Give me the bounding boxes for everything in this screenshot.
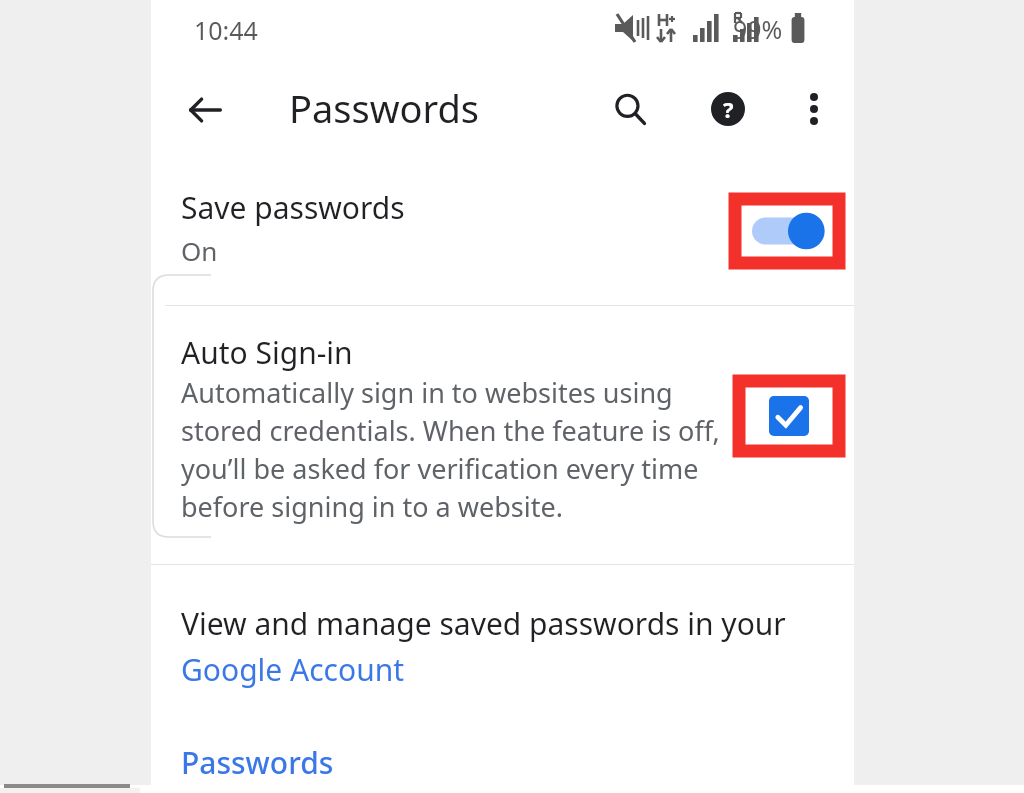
button[interactable]: View and manage saved passwords in your … — [181, 603, 801, 690]
staticText: Passwords — [289, 82, 480, 134]
staticText: 10:44 — [194, 13, 258, 47]
staticText: Auto Sign-in — [181, 332, 353, 373]
staticText: Automatically sign in to websites using … — [181, 374, 721, 525]
staticText: Save passwords — [181, 187, 405, 228]
button[interactable]: Passwords — [181, 742, 334, 783]
button[interactable]: Save passwords — [151, 160, 854, 305]
staticText: 99% — [733, 12, 783, 46]
staticText: ? — [723, 94, 734, 124]
button[interactable]: Auto Sign-in — [151, 306, 854, 564]
button[interactable]: Auto Sign-in checkbox — [739, 381, 839, 451]
button[interactable]: Help — [697, 78, 759, 140]
button[interactable]: Back — [175, 80, 235, 140]
staticText: On — [181, 233, 218, 268]
button[interactable]: Search — [599, 78, 661, 140]
button[interactable]: More options — [783, 78, 845, 140]
